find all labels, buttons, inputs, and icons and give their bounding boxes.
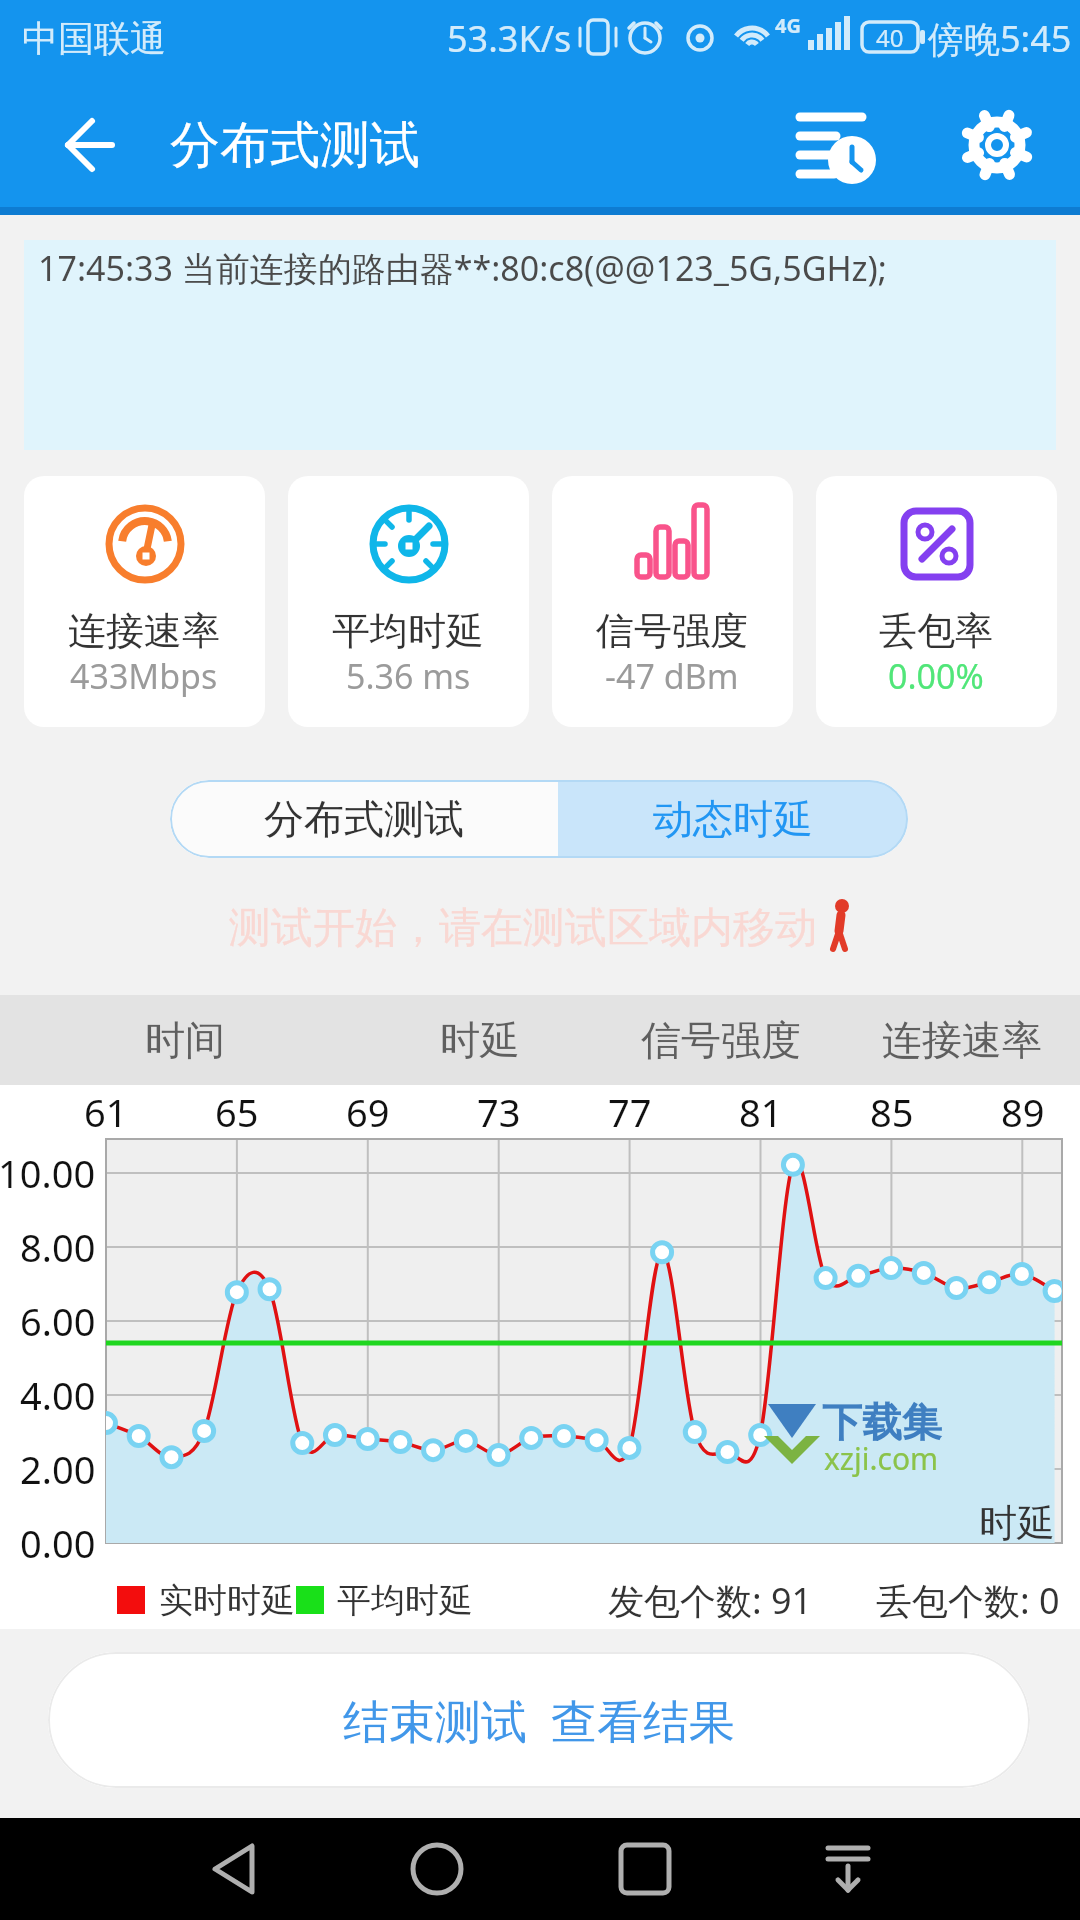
button[interactable] (790, 105, 880, 185)
staticText: 69 (346, 1086, 390, 1138)
button[interactable] (288, 476, 529, 727)
staticText: -47 dBm (605, 653, 739, 699)
staticText: 8.00 (20, 1221, 96, 1273)
staticText: 0.00% (888, 653, 984, 699)
staticText: 10.00 (0, 1147, 96, 1199)
staticText: 信号强度 (641, 1015, 801, 1065)
staticText: 73 (477, 1086, 521, 1138)
staticText: 平均时延 (332, 607, 484, 655)
button[interactable] (955, 105, 1039, 185)
staticText: 连接速率 (68, 607, 220, 655)
staticText: 丢包率 (879, 607, 993, 655)
staticText: 时延 (979, 1499, 1055, 1547)
button[interactable] (552, 476, 793, 727)
staticText: 结束测试 查看结果 (343, 1689, 735, 1752)
staticText: 81 (739, 1086, 783, 1138)
staticText: 65 (215, 1086, 259, 1138)
staticText: 时间 (145, 1015, 225, 1065)
staticText: 40 (876, 21, 904, 54)
button[interactable] (816, 476, 1057, 727)
button[interactable] (798, 1828, 898, 1910)
staticText: 分布式测试 (264, 794, 464, 844)
staticText: 5.36 ms (346, 653, 471, 699)
staticText: 实时时延 (159, 1579, 295, 1622)
staticText: 6.00 (20, 1295, 96, 1347)
staticText: 丢包个数: 0 (876, 1576, 1060, 1625)
staticText: 0.00 (20, 1517, 96, 1569)
staticText: 85 (870, 1086, 914, 1138)
staticText: 信号强度 (596, 607, 748, 655)
staticText: 4G (775, 12, 801, 39)
staticText: 连接速率 (882, 1015, 1042, 1065)
staticText: 2.00 (20, 1443, 96, 1495)
button[interactable] (40, 105, 140, 185)
button[interactable] (185, 1828, 285, 1910)
staticText: 测试开始，请在测试区域内移动 (229, 902, 817, 955)
staticText: 发包个数: 91 (608, 1576, 813, 1625)
staticText: 433Mbps (70, 653, 218, 699)
staticText: xzji.com (824, 1438, 939, 1479)
staticText: 分布式测试 (170, 114, 420, 177)
button[interactable] (387, 1828, 487, 1910)
staticText: 53.3K/s (447, 14, 572, 63)
staticText: 4.00 (20, 1369, 96, 1421)
staticText: 89 (1001, 1086, 1045, 1138)
staticText: 下载集 (822, 1397, 942, 1447)
staticText: 傍晚5:45 (928, 14, 1072, 63)
staticText: 61 (84, 1086, 128, 1138)
staticText: 动态时延 (653, 794, 813, 844)
button[interactable] (595, 1828, 695, 1910)
staticText: 77 (608, 1086, 652, 1138)
staticText: 中国联通 (22, 16, 166, 61)
staticText: 时延 (440, 1015, 520, 1065)
button[interactable] (558, 780, 908, 858)
staticText: 平均时延 (337, 1579, 473, 1622)
button[interactable]: 结束测试 查看结果 (48, 1652, 1030, 1788)
staticText: 17:45:33 当前连接的路由器**:80:c8(@@123_5G,5GHz)… (38, 245, 887, 291)
button[interactable] (24, 476, 265, 727)
button[interactable] (170, 780, 558, 858)
